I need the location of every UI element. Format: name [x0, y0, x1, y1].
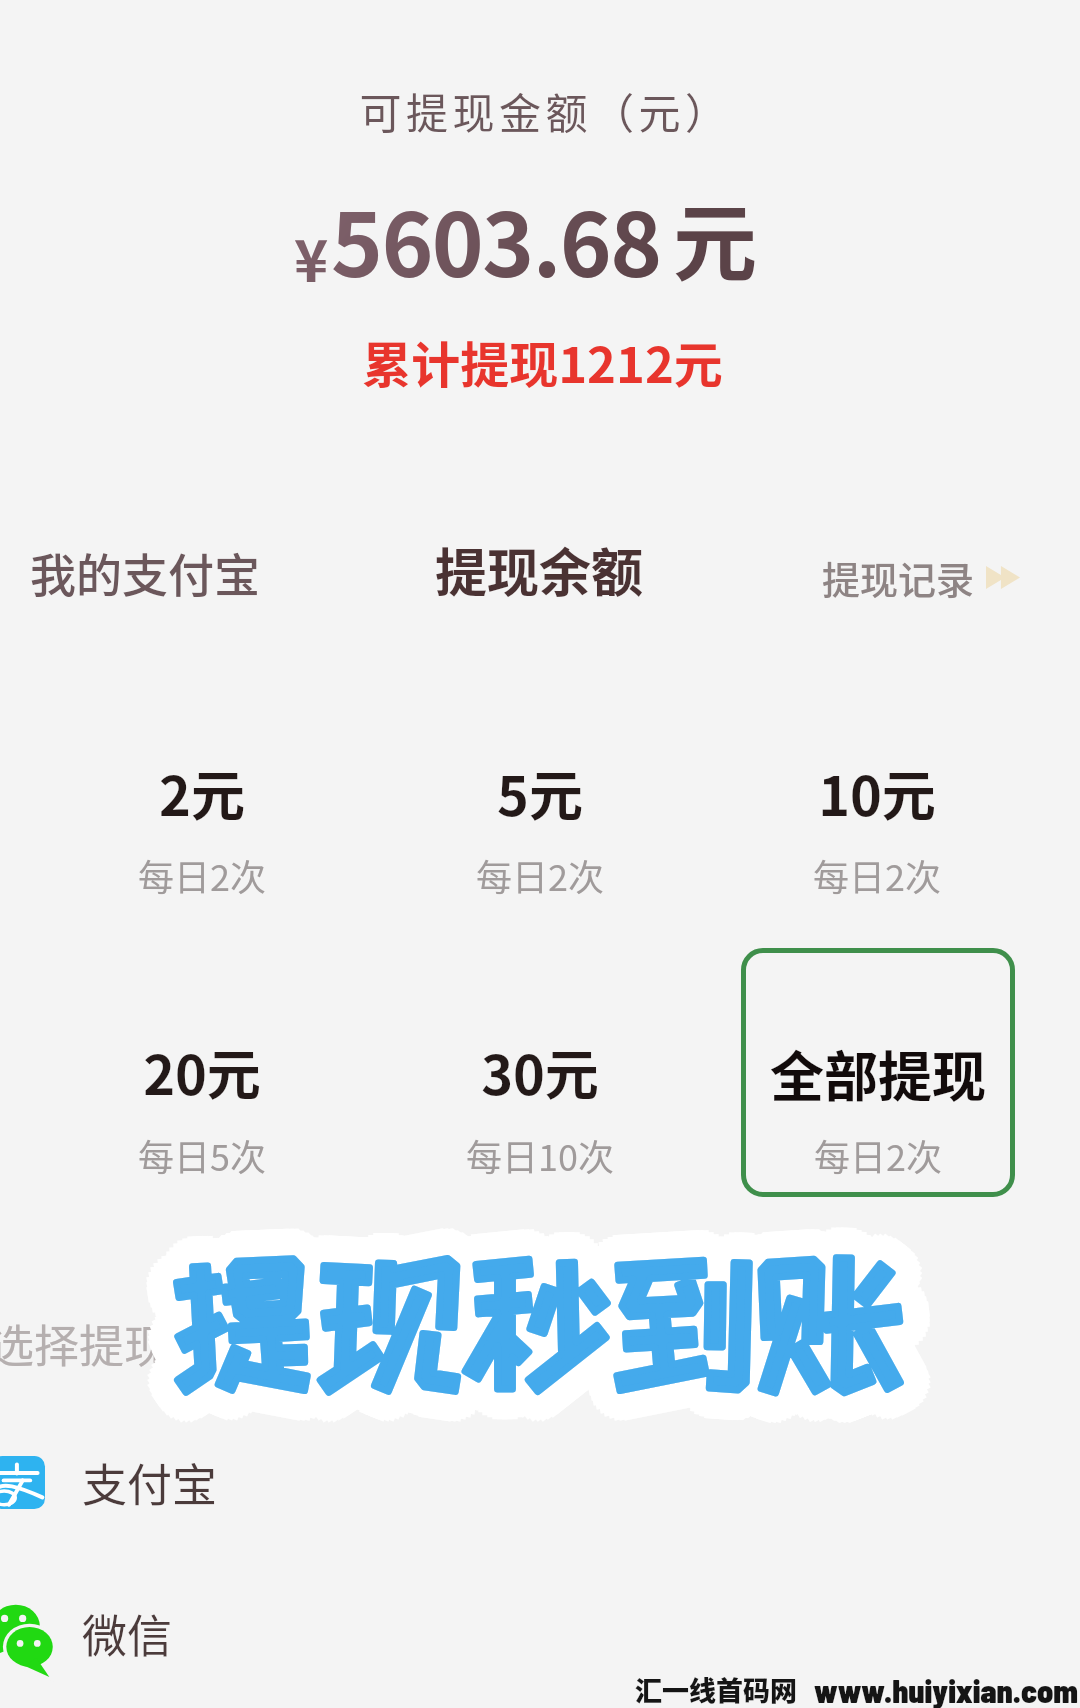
button[interactable]: 10元	[740, 749, 1014, 898]
staticText: 支付宝	[82, 1450, 218, 1515]
staticText: 提现秒到账	[164, 1220, 901, 1380]
staticText: 提现秒到账	[161, 1230, 898, 1390]
staticText: 提现秒到账	[159, 1218, 896, 1378]
button[interactable]: 提现余额	[409, 529, 669, 609]
staticText: 提现秒到账	[177, 1266, 914, 1426]
staticText: 提现秒到账	[172, 1220, 909, 1380]
staticText: 提现秒到账	[156, 1235, 893, 1395]
staticText: 提现秒到账	[146, 1246, 883, 1406]
button[interactable]: Alipay	[0, 1425, 1080, 1537]
button[interactable]: 20元	[65, 1028, 339, 1177]
staticText: 提现秒到账	[162, 1242, 899, 1402]
staticText: 提现秒到账	[171, 1243, 908, 1403]
staticText: 提现秒到账	[173, 1246, 910, 1406]
staticText: 提现秒到账	[176, 1248, 913, 1408]
staticText: 提现秒到账	[174, 1240, 911, 1400]
staticText: 提现秒到账	[159, 1247, 896, 1407]
staticText: 提现秒到账	[161, 1254, 898, 1414]
staticText: 提现秒到账	[154, 1242, 891, 1402]
staticText: 提现秒到账	[182, 1225, 919, 1385]
button[interactable]: 5元	[403, 749, 677, 898]
staticText: 提现秒到账	[157, 1233, 894, 1393]
staticText: www.huiyixian.com	[814, 1671, 1078, 1708]
staticText: 提现记录	[822, 550, 975, 605]
staticText: 提现秒到账	[142, 1227, 879, 1387]
staticText: 提现秒到账	[165, 1243, 902, 1403]
staticText: 提现秒到账	[163, 1229, 900, 1389]
staticText: 提现秒到账	[171, 1243, 908, 1403]
staticText: 提现秒到账	[169, 1248, 906, 1408]
staticText: 提现秒到账	[191, 1261, 928, 1421]
staticText: 提现秒到账	[154, 1240, 891, 1400]
button[interactable]: 我的支付宝	[10, 532, 280, 612]
staticText: 提现秒到账	[187, 1231, 924, 1391]
staticText: 提现秒到账	[168, 1239, 905, 1399]
staticText: 提现秒到账	[138, 1242, 875, 1402]
staticText: 提现秒到账	[158, 1242, 895, 1402]
staticText: 提现秒到账	[140, 1232, 877, 1392]
staticText: 可提现金额（元）	[359, 80, 732, 141]
staticText: 提现秒到账	[165, 1233, 902, 1393]
staticText: 提现秒到账	[158, 1240, 895, 1400]
staticText: 提现秒到账	[167, 1245, 904, 1405]
staticText: 提现秒到账	[173, 1268, 910, 1428]
staticText: 提现秒到账	[190, 1246, 927, 1406]
button[interactable]: 2元	[65, 749, 339, 898]
staticText: 提现秒到账	[168, 1245, 905, 1405]
staticText: 提现秒到账	[170, 1252, 907, 1412]
staticText: 提现秒到账	[177, 1245, 914, 1405]
staticText: 提现秒到账	[192, 1251, 929, 1411]
staticText: 提现秒到账	[145, 1255, 882, 1415]
staticText: 提现秒到账	[174, 1225, 911, 1385]
staticText: 提现秒到账	[155, 1265, 892, 1425]
staticText: 提现秒到账	[144, 1251, 881, 1411]
staticText: 提现秒到账	[180, 1235, 917, 1395]
staticText: 提现秒到账	[145, 1223, 882, 1383]
staticText: 提现秒到账	[163, 1251, 900, 1411]
staticText: 提现秒到账	[189, 1250, 926, 1410]
staticText: 提现秒到账	[152, 1251, 889, 1411]
staticText: 提现秒到账	[159, 1258, 896, 1418]
staticText: 提现秒到账	[168, 1242, 905, 1402]
staticText: 提现秒到账	[171, 1241, 908, 1401]
staticText: 提现秒到账	[165, 1240, 902, 1400]
button[interactable]: 全部提现	[741, 948, 1015, 1197]
staticText: 提现秒到账	[166, 1256, 903, 1416]
staticText: 10元	[818, 753, 936, 831]
button[interactable]: WeChat	[0, 1580, 1080, 1692]
staticText: 提现秒到账	[163, 1238, 900, 1398]
staticText: 提现秒到账	[162, 1243, 899, 1403]
staticText: 提现秒到账	[198, 1247, 935, 1407]
staticText: 提现秒到账	[168, 1236, 905, 1396]
staticText: 提现秒到账	[177, 1247, 914, 1407]
staticText: 提现秒到账	[168, 1252, 905, 1412]
staticText: 提现秒到账	[188, 1259, 925, 1419]
staticText: 提现秒到账	[145, 1261, 882, 1421]
staticText: 提现秒到账	[153, 1216, 890, 1376]
staticText: 提现秒到账	[171, 1233, 908, 1393]
button[interactable]: 提现记录	[822, 547, 1028, 607]
staticText: 提现秒到账	[174, 1241, 911, 1401]
staticText: ¥	[294, 215, 329, 299]
staticText: 提现秒到账	[138, 1237, 875, 1397]
staticText: 提现秒到账	[185, 1222, 922, 1382]
staticText: 提现秒到账	[173, 1245, 910, 1405]
staticText: 提现秒到账	[168, 1216, 905, 1376]
button[interactable]: 30元	[403, 1028, 677, 1177]
staticText: 提现秒到账	[157, 1261, 894, 1421]
staticText: 提现秒到账	[178, 1242, 915, 1402]
staticText: 提现秒到账	[177, 1218, 914, 1378]
staticText: 提现秒到账	[163, 1245, 900, 1405]
staticText: 提现秒到账	[160, 1248, 897, 1408]
staticText: 提现秒到账	[178, 1244, 915, 1404]
staticText: 提现秒到账	[170, 1244, 907, 1404]
staticText: 提现秒到账	[182, 1240, 919, 1400]
staticText: 提现秒到账	[168, 1272, 905, 1432]
staticText: 提现秒到账	[171, 1260, 908, 1420]
staticText: 提现秒到账	[154, 1254, 891, 1414]
staticText: 提现秒到账	[190, 1238, 927, 1398]
staticText: 提现秒到账	[179, 1261, 916, 1421]
staticText: 提现秒到账	[171, 1243, 908, 1403]
staticText: 提现秒到账	[170, 1244, 907, 1404]
staticText: 提现秒到账	[179, 1223, 916, 1383]
